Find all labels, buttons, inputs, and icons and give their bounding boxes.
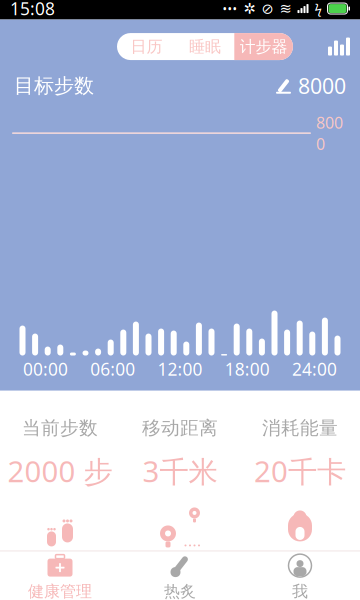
staticText: ≋: [279, 0, 291, 17]
staticText: 3千米: [142, 451, 217, 490]
staticText: 2000 步: [7, 451, 112, 490]
button[interactable]: 睡眠: [176, 33, 234, 60]
staticText: 00:00: [23, 357, 68, 380]
staticText: 15:08: [10, 0, 55, 20]
button[interactable]: 热炙: [120, 551, 240, 600]
staticText: 06:00: [90, 357, 135, 380]
button[interactable]: 我: [240, 551, 360, 600]
staticText: 计步器: [240, 37, 288, 56]
staticText: 热炙: [164, 582, 196, 600]
staticText: 24:00: [292, 357, 337, 380]
button[interactable]: 8000: [275, 72, 346, 100]
button[interactable]: 日历: [117, 33, 176, 60]
staticText: 20千卡: [254, 451, 346, 490]
button[interactable]: 移动距离: [120, 417, 240, 550]
staticText: 移动距离: [142, 417, 218, 439]
staticText: 目标步数: [14, 73, 94, 98]
button[interactable]: 计步器: [234, 33, 293, 60]
staticText: 健康管理: [28, 582, 92, 600]
button[interactable]: 统计图表: [318, 32, 360, 62]
staticText: 8000: [298, 72, 346, 100]
staticText: 睡眠: [189, 37, 221, 56]
staticText: ⊘: [261, 0, 273, 17]
staticText: 我: [292, 582, 308, 600]
button[interactable]: 健康管理: [0, 551, 120, 600]
button[interactable]: 当前步数: [0, 417, 120, 550]
staticText: 当前步数: [22, 417, 98, 439]
staticText: ϟ: [314, 0, 321, 17]
staticText: •••: [222, 1, 237, 16]
staticText: 18:00: [225, 357, 270, 380]
staticText: 8000: [316, 112, 343, 154]
staticText: 12:00: [157, 357, 202, 380]
staticText: ✲: [243, 0, 255, 17]
staticText: 日历: [130, 37, 162, 56]
staticText: 消耗能量: [262, 417, 338, 439]
button[interactable]: 消耗能量: [240, 417, 360, 550]
